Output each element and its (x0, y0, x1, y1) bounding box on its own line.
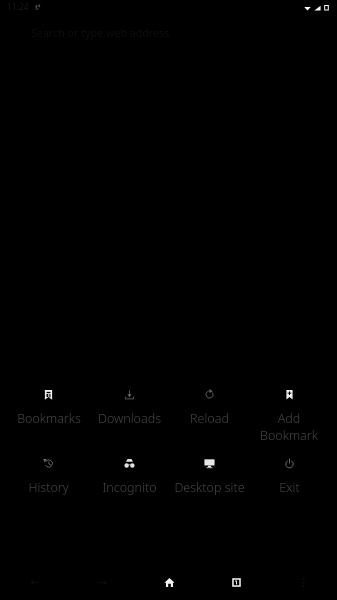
staticText: History (28, 479, 69, 496)
staticText: Exit (279, 479, 300, 496)
staticText: Reload (190, 410, 229, 427)
staticText: Search or type web address (31, 26, 170, 41)
staticText: Add Bookmark (260, 410, 318, 443)
staticText: Downloads (98, 410, 161, 427)
button[interactable]: Desktop site (169, 452, 249, 521)
button[interactable]: Downloads (89, 383, 169, 452)
staticText: Bookmarks (17, 410, 81, 427)
button[interactable]: Incognito (89, 452, 169, 521)
button[interactable]: Bookmarks (8, 383, 89, 452)
button[interactable]: Add Bookmark (249, 383, 329, 452)
staticText: Incognito (102, 479, 157, 496)
button[interactable]: Home (136, 564, 203, 600)
button[interactable]: Tabs (203, 564, 270, 600)
staticText: Desktop site (174, 479, 245, 496)
staticText: 11:24 (7, 1, 29, 13)
button[interactable]: History (8, 452, 89, 521)
button[interactable]: Exit (249, 452, 329, 521)
button[interactable]: Reload (169, 383, 249, 452)
